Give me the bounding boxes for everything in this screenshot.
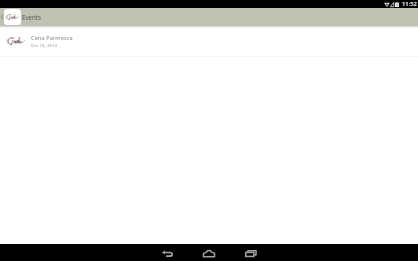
button[interactable]: Recent apps bbox=[230, 245, 272, 261]
button[interactable]: Back bbox=[146, 245, 188, 261]
staticText: Events bbox=[22, 13, 41, 22]
staticText: Oct 18, 2014 bbox=[31, 42, 58, 48]
button[interactable]: Cena Parmesca bbox=[0, 26, 418, 57]
staticText: 11:52 bbox=[402, 0, 417, 8]
staticText: Cena Parmesca bbox=[31, 34, 73, 42]
button[interactable]: Home bbox=[188, 245, 230, 261]
button[interactable]: Navigate up bbox=[0, 8, 44, 26]
